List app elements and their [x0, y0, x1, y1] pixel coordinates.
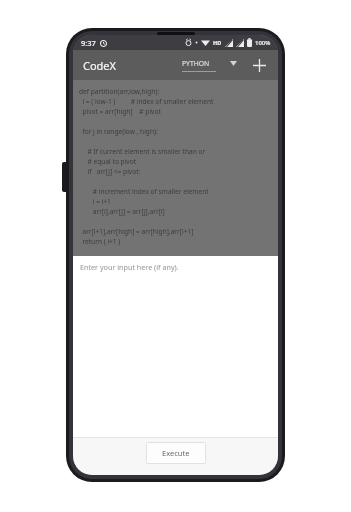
staticText: for j in range(low , high):: [79, 127, 158, 136]
staticText: CodeX: [83, 58, 117, 73]
staticText: if arr[j] <= pivot:: [79, 167, 141, 176]
staticText: HD: [213, 39, 222, 46]
button[interactable]: def partition(arr,low,high):: [73, 80, 278, 256]
staticText: Execute: [162, 448, 190, 458]
staticText: Enter your input here (if any).: [80, 262, 179, 272]
staticText: i = ( low-1 ) # index of smaller element: [79, 97, 214, 106]
staticText: # increment index of smaller element: [79, 187, 209, 196]
button[interactable]: Enter your input here (if any).: [73, 256, 278, 437]
staticText: 9:37: [81, 38, 96, 48]
staticText: def partition(arr,low,high):: [79, 87, 160, 96]
button[interactable]: Add new file: [248, 54, 270, 76]
button[interactable]: CodeX: [73, 54, 121, 77]
staticText: arr[i],arr[j] = arr[j],arr[i]: [79, 207, 165, 216]
staticText: pivot = arr[high] # pivot: [79, 107, 161, 116]
staticText: i = i+1: [79, 197, 111, 206]
button[interactable]: PYTHON: [179, 55, 240, 76]
staticText: return ( i+1 ): [79, 237, 121, 246]
button[interactable]: Execute: [146, 442, 206, 464]
staticText: # equal to pivot: [79, 157, 137, 166]
staticText: # If current element is smaller than or: [79, 147, 206, 156]
staticText: 100%: [255, 39, 271, 47]
staticText: PYTHON: [182, 59, 210, 68]
staticText: arr[i+1],arr[high] = arr[high],arr[i+1]: [79, 227, 194, 236]
